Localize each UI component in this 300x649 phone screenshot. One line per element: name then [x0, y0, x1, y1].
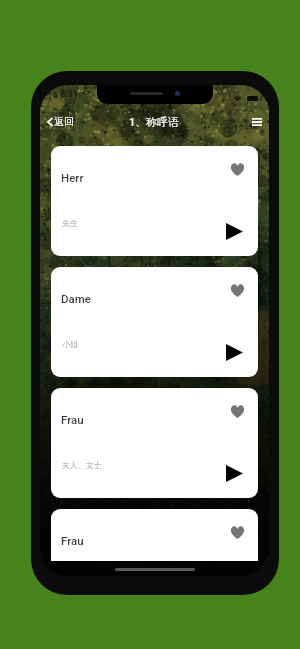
staticText: 返回: [54, 115, 74, 128]
button[interactable]: Frau: [51, 509, 258, 561]
staticText: 8:31: [60, 89, 79, 100]
button[interactable]: Dame: [51, 267, 258, 377]
button[interactable]: 返回: [40, 111, 81, 132]
button[interactable]: Favorite: [223, 509, 258, 547]
button[interactable]: Play: [218, 336, 258, 377]
staticText: Dame: [61, 292, 91, 305]
button[interactable]: Favorite: [223, 388, 258, 426]
button[interactable]: Herr: [51, 146, 258, 256]
staticText: Frau: [61, 413, 84, 426]
button[interactable]: Menu: [245, 112, 269, 132]
button[interactable]: Favorite: [223, 267, 258, 305]
button[interactable]: Play: [218, 457, 258, 498]
staticText: 夫人、女士: [62, 460, 102, 470]
button[interactable]: Frau: [51, 388, 258, 498]
staticText: 先生: [62, 218, 78, 228]
button[interactable]: Favorite: [223, 146, 258, 184]
button[interactable]: Play: [218, 215, 258, 256]
staticText: 1、称呼语: [129, 115, 180, 129]
staticText: 小姐: [62, 339, 78, 349]
staticText: Frau: [61, 534, 84, 547]
staticText: Herr: [61, 171, 84, 184]
